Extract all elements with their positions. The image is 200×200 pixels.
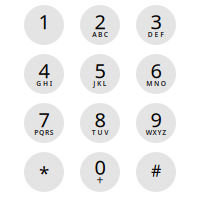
staticText: K [97,79,101,88]
staticText: * [39,161,49,185]
staticText: Z [162,128,166,137]
staticText: P [34,128,38,137]
staticText: C [104,30,108,39]
staticText: B [98,30,102,39]
staticText: G [36,79,41,88]
staticText: # [151,160,161,181]
staticText: R [45,128,49,137]
staticText: D [148,30,153,39]
staticText: 6 [150,57,161,84]
staticText: F [160,30,164,39]
staticText: Q [39,128,44,137]
staticText: 3 [150,8,161,35]
button[interactable]: 1 [24,5,64,45]
staticText: 2 [94,8,105,35]
staticText: + [96,171,103,187]
staticText: H [43,79,48,88]
staticText: 9 [150,106,161,133]
staticText: J [93,79,95,88]
staticText: W [146,128,152,137]
staticText: V [104,128,108,137]
staticText: L [103,79,107,88]
staticText: Y [157,128,161,137]
button[interactable]: 8 T U V [80,103,120,143]
button[interactable]: 6 M N O [136,54,176,94]
button[interactable]: 4 G H I [24,54,64,94]
staticText: M [146,79,152,88]
staticText: 5 [94,57,105,84]
staticText: 4 [38,57,49,84]
button[interactable]: 0 Plus [80,152,120,192]
button[interactable]: Pound [136,152,176,192]
staticText: A [92,30,96,39]
staticText: N [154,79,159,88]
button[interactable]: 9 W X Y Z [136,103,176,143]
staticText: 1 [38,8,49,35]
button[interactable]: Star [24,152,64,192]
staticText: I [50,79,52,88]
staticText: 0 [94,154,105,180]
button[interactable]: 7 P Q R S [24,103,64,143]
staticText: U [97,128,102,137]
staticText: T [92,128,96,137]
staticText: O [161,79,166,88]
staticText: X [153,128,157,137]
button[interactable]: 2 A B C [80,5,120,45]
staticText: 7 [38,106,49,133]
staticText: E [154,30,158,39]
staticText: 8 [94,106,105,133]
button[interactable]: 5 J K L [80,54,120,94]
staticText: S [50,128,54,137]
button[interactable]: 3 D E F [136,5,176,45]
